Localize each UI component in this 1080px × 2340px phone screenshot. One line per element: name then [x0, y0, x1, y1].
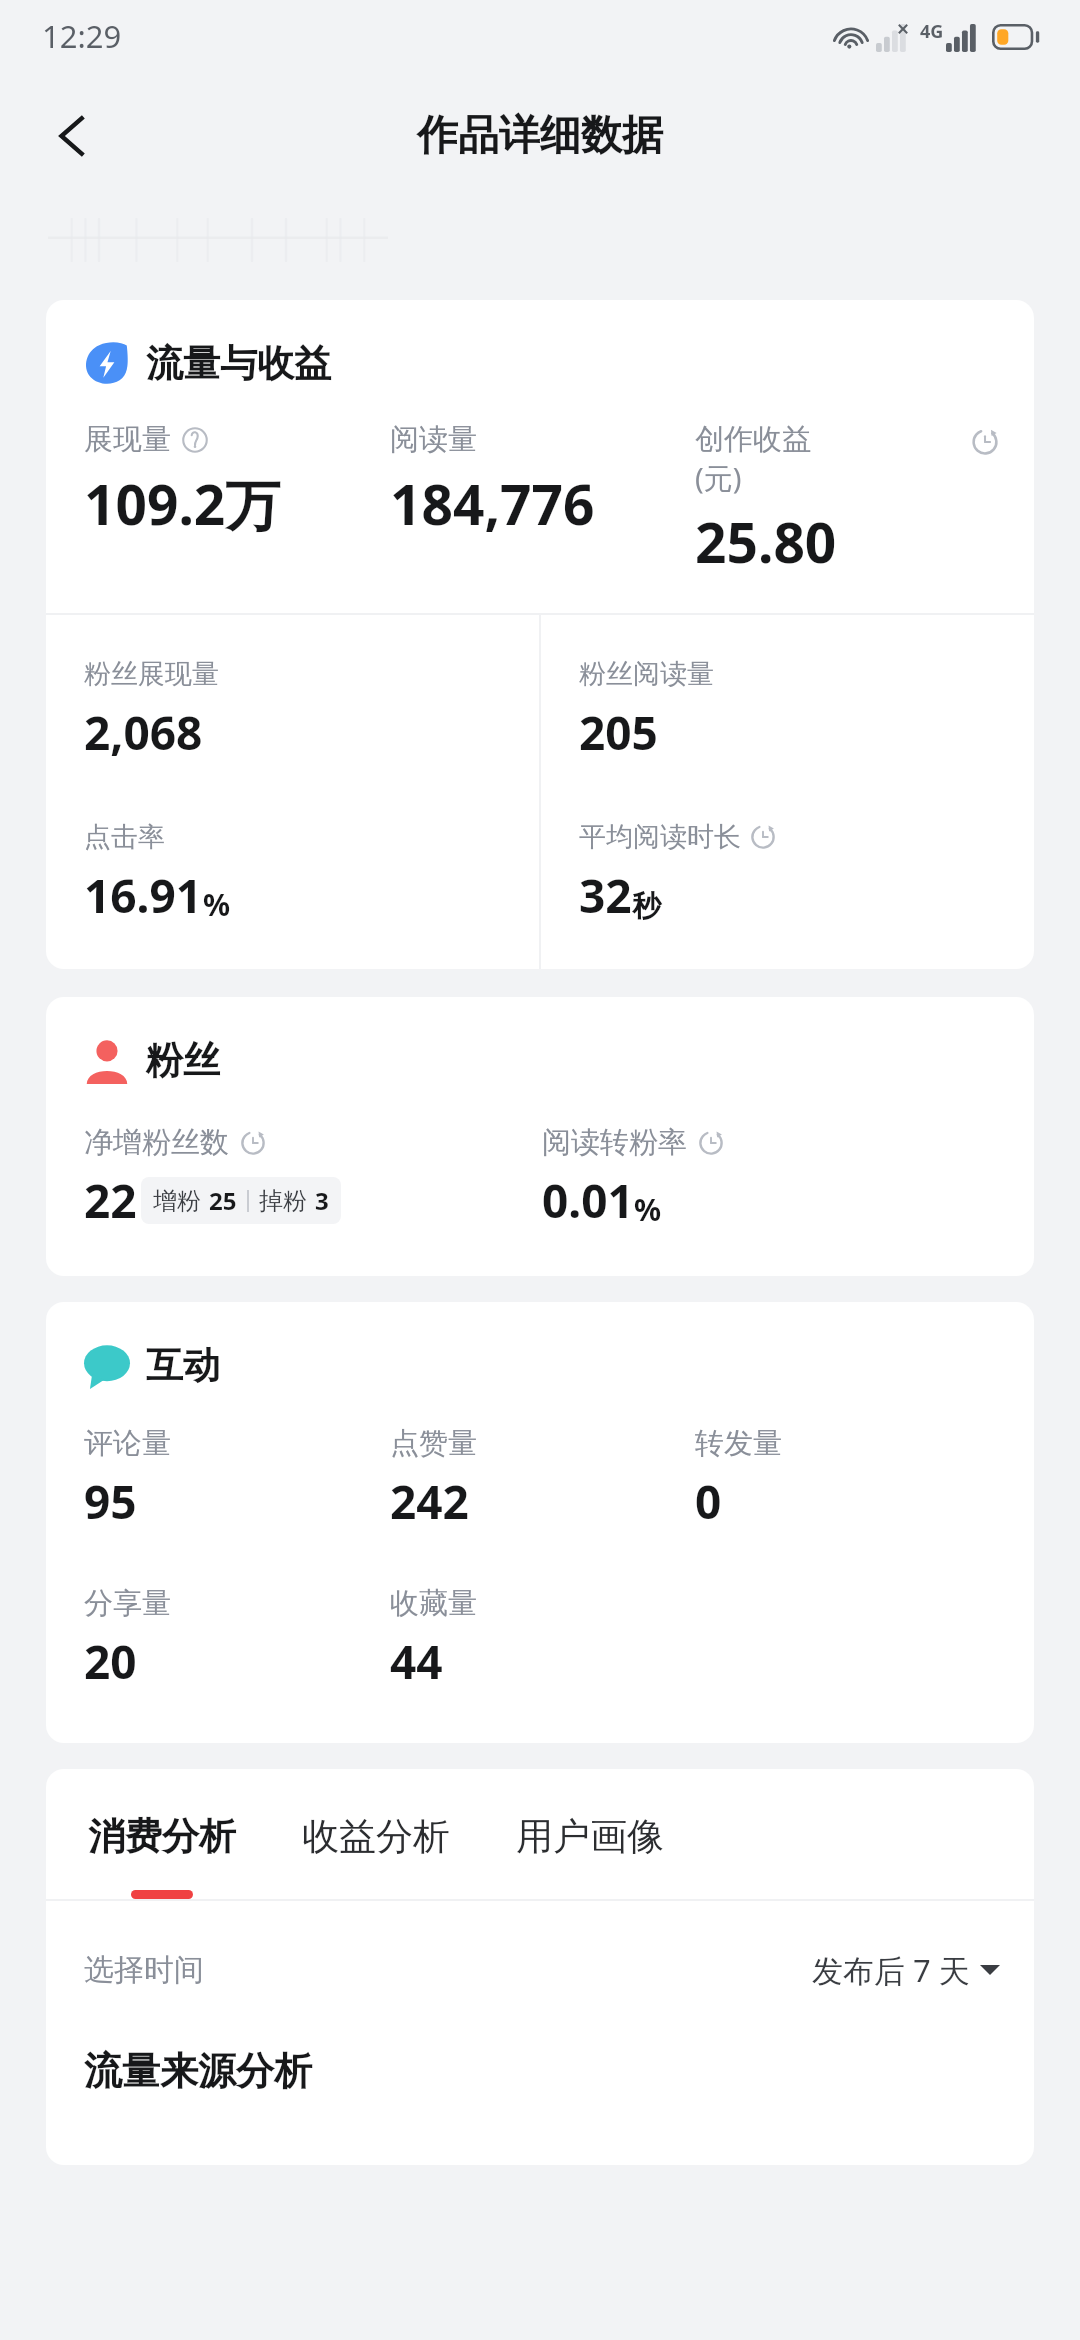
staticText: 收藏量 — [390, 1585, 477, 1622]
staticText: 平均阅读时长 — [579, 820, 741, 854]
staticText: 作品详细数据 — [417, 110, 663, 162]
staticText: 展现量 — [84, 421, 171, 458]
staticText: 22 — [84, 1169, 137, 1232]
staticText: 95 — [84, 1470, 137, 1533]
staticText: 收益分析 — [302, 1813, 450, 1860]
button[interactable]: 历史数据 — [239, 1129, 267, 1157]
staticText: 粉丝展现量 — [84, 657, 219, 691]
staticText: % — [634, 1189, 662, 1230]
staticText: 184,776 — [390, 466, 595, 541]
staticText: 秒 — [632, 888, 661, 925]
staticText: 3 — [315, 1184, 329, 1217]
button[interactable]: 消费分析 — [84, 1813, 240, 1899]
staticText: 评论量 — [84, 1425, 171, 1462]
staticText: 粉丝 — [146, 1037, 220, 1084]
staticText: 0 — [695, 1470, 722, 1533]
staticText: 25 — [209, 1184, 237, 1217]
staticText: 4G — [920, 19, 944, 44]
staticText: 转发量 — [695, 1425, 782, 1462]
staticText: 12:29 — [42, 15, 122, 57]
staticText: 点赞量 — [390, 1425, 477, 1462]
button[interactable]: 历史数据 — [970, 427, 1000, 457]
staticText: 创作收益 — [695, 421, 811, 458]
staticText: 0.01 — [542, 1169, 634, 1232]
staticText: 阅读量 — [390, 421, 477, 458]
staticText: 20 — [84, 1630, 137, 1693]
staticText: 25.80 — [695, 504, 837, 579]
staticText: (元) — [695, 458, 742, 498]
staticText: 发布后 7 天 — [812, 1949, 970, 1991]
button[interactable]: 历史数据 — [749, 823, 777, 851]
staticText: 109.2万 — [84, 466, 281, 541]
button[interactable]: 发布后 7 天 — [812, 1949, 1000, 1991]
button[interactable]: Back — [24, 88, 120, 184]
staticText: 掉粉 — [259, 1186, 307, 1216]
staticText: 阅读转粉率 — [542, 1124, 687, 1161]
staticText: 32 — [579, 864, 632, 927]
staticText: 2,068 — [84, 701, 203, 764]
staticText: 用户画像 — [516, 1813, 664, 1860]
staticText: 流量与收益 — [146, 340, 331, 387]
staticText: 增粉 — [153, 1186, 201, 1216]
button[interactable]: 收益分析 — [298, 1813, 454, 1899]
button[interactable]: 用户画像 — [512, 1813, 668, 1899]
staticText: 44 — [390, 1630, 443, 1693]
staticText: 选择时间 — [84, 1951, 204, 1989]
staticText: 242 — [390, 1470, 469, 1533]
staticText: 粉丝阅读量 — [579, 657, 714, 691]
staticText: 流量来源分析 — [84, 2047, 312, 2095]
staticText: 205 — [579, 701, 658, 764]
staticText: 分享量 — [84, 1585, 171, 1622]
staticText: 16.91 — [84, 864, 203, 927]
staticText: 点击率 — [84, 820, 165, 854]
staticText: 互动 — [146, 1342, 220, 1389]
button[interactable]: 历史数据 — [697, 1129, 725, 1157]
staticText: 净增粉丝数 — [84, 1124, 229, 1161]
staticText: % — [203, 884, 231, 925]
staticText: 消费分析 — [88, 1813, 236, 1860]
